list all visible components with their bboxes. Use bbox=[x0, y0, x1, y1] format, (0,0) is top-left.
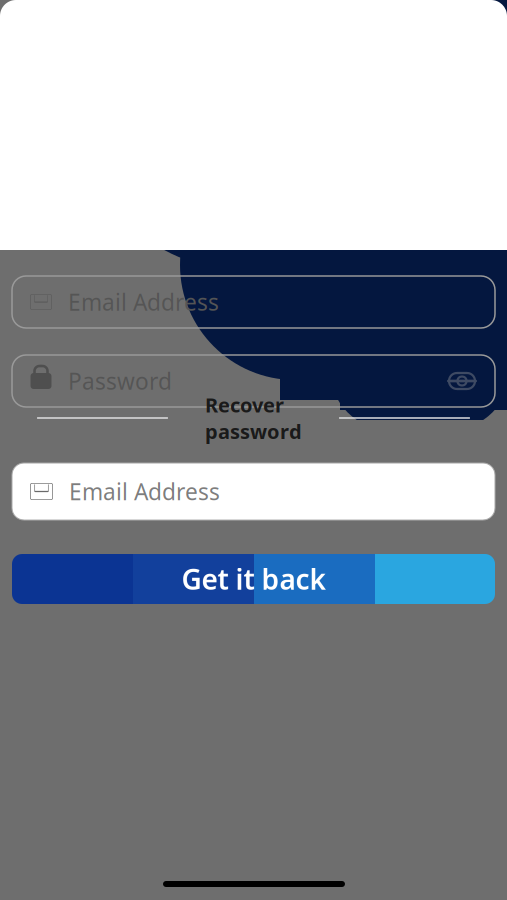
staticText: Recover password bbox=[205, 391, 302, 444]
staticText: Password bbox=[68, 366, 172, 396]
button[interactable]: Get it back bbox=[12, 554, 495, 604]
staticText: Email Address bbox=[69, 476, 220, 506]
button[interactable]: Email Address bbox=[12, 463, 495, 520]
staticText: Get it back bbox=[181, 560, 325, 598]
staticText: Email Address bbox=[68, 287, 219, 317]
